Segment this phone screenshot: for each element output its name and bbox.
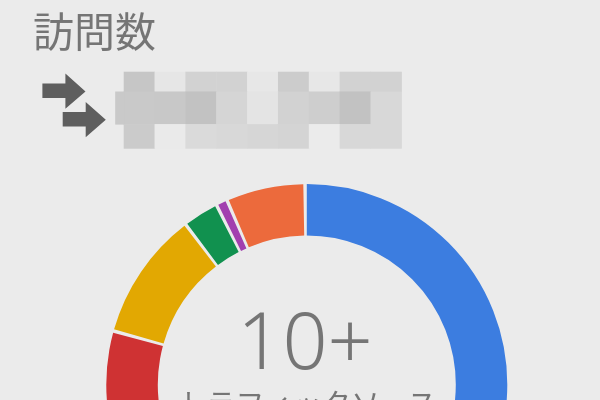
button[interactable]: Traffic sources chart: [106, 184, 508, 400]
staticText: トラフィックソース: [107, 381, 507, 400]
staticText: 訪問数: [33, 0, 156, 58]
other: Compare visits: [40, 70, 110, 140]
staticText: 10+: [105, 285, 505, 393]
button[interactable]: 訪問数: [0, 0, 440, 160]
